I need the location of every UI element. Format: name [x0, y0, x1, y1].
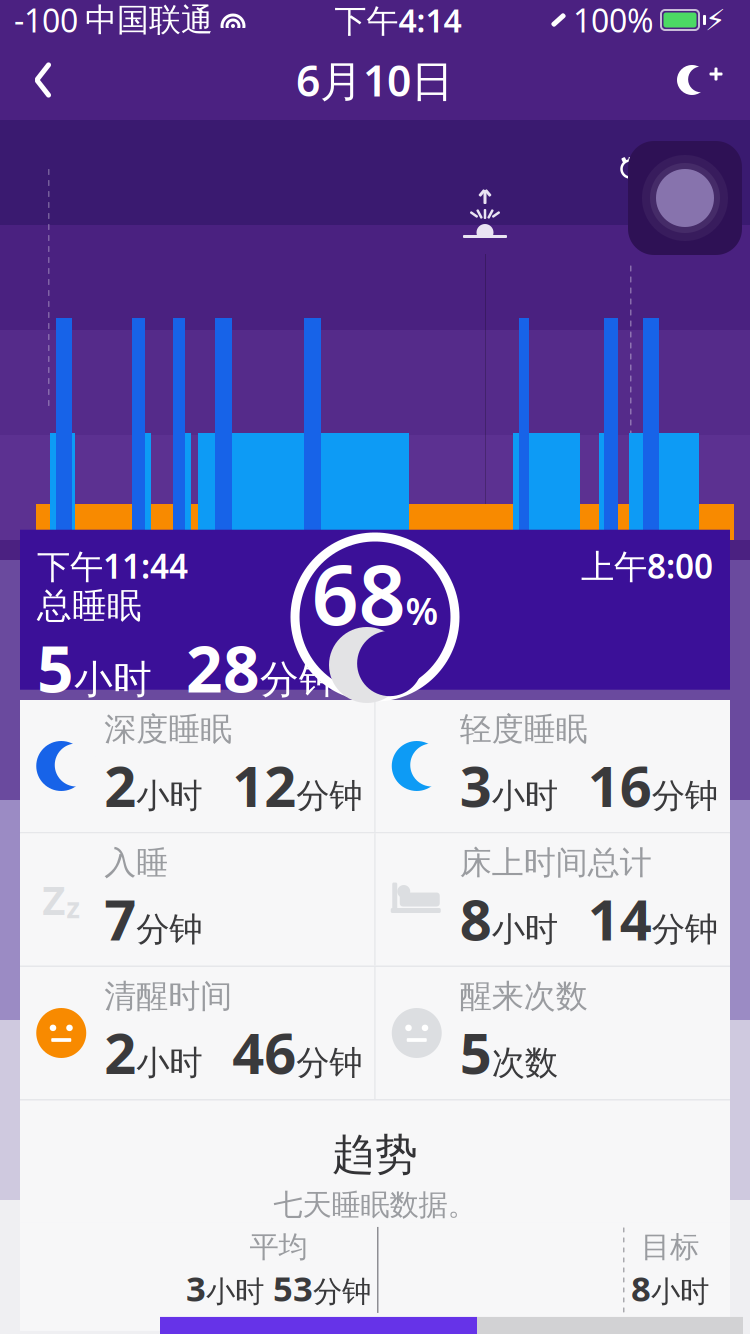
staticText: 6月10日 — [296, 52, 454, 108]
staticText: 28 — [152, 625, 260, 710]
staticText: 5 — [37, 625, 74, 710]
button[interactable]: Z — [20, 833, 374, 965]
staticText: 小时 — [651, 1274, 709, 1310]
staticText: 下午11:44 — [37, 544, 188, 588]
staticText: 中国联通 — [85, 0, 213, 40]
button[interactable]: 返回 — [14, 52, 72, 108]
staticText: z — [66, 889, 80, 926]
staticText: 12 — [202, 748, 296, 822]
staticText: 分钟 — [296, 775, 362, 816]
staticText: 轻度睡眠 — [460, 710, 588, 749]
staticText: 小时 — [206, 1274, 273, 1310]
staticText: 小时 — [74, 656, 152, 703]
staticText: 3 — [186, 1265, 206, 1311]
staticText: 分钟 — [296, 1042, 362, 1083]
staticText: 床上时间总计 — [460, 843, 652, 882]
staticText: 分钟 — [136, 909, 202, 950]
staticText: 小时 — [136, 775, 202, 816]
staticText: 分钟 — [652, 775, 718, 816]
staticText: 总睡眠 — [37, 585, 142, 627]
staticText: 100% — [573, 0, 654, 41]
staticText: 14 — [558, 881, 652, 956]
staticText: 小时 — [492, 775, 558, 816]
staticText: 清醒时间 — [104, 977, 232, 1016]
button[interactable]: 床上时间总计 — [376, 833, 730, 965]
staticText: 2 — [104, 748, 136, 822]
staticText: 分钟 — [313, 1274, 371, 1310]
staticText: ⚡︎ — [705, 3, 726, 37]
staticText: 8 — [631, 1265, 651, 1311]
staticText: 小时 — [136, 1042, 202, 1083]
button[interactable]: 醒来次数 — [376, 967, 730, 1099]
staticText: 深度睡眠 — [104, 710, 232, 749]
staticText: 8 — [460, 881, 492, 956]
staticText: 16 — [558, 748, 652, 822]
staticText: 46 — [202, 1015, 296, 1089]
staticText: 2 — [104, 1015, 136, 1089]
staticText: Z — [42, 873, 65, 926]
staticText: 上午8:00 — [581, 544, 713, 588]
staticText: 入睡 — [104, 843, 168, 882]
staticText: 68 — [311, 538, 405, 648]
button[interactable]: 添加睡眠 — [664, 58, 736, 102]
staticText: 5 — [460, 1015, 492, 1089]
button[interactable]: 深度睡眠 — [20, 700, 374, 832]
staticText: % — [405, 586, 438, 635]
staticText: 下午4:14 — [334, 0, 461, 41]
staticText: 七天睡眠数据。 — [273, 1187, 476, 1223]
staticText: 平均 — [249, 1229, 307, 1265]
staticText: 次数 — [492, 1042, 558, 1083]
staticText: 7 — [104, 881, 136, 956]
staticText: 53 — [273, 1265, 313, 1311]
staticText: 目标 — [641, 1229, 699, 1265]
staticText: -100 — [14, 0, 78, 41]
staticText: 分钟 — [260, 656, 338, 703]
staticText: 醒来次数 — [460, 977, 588, 1016]
button[interactable]: 轻度睡眠 — [376, 700, 730, 832]
staticText: 小时 — [492, 909, 558, 950]
staticText: 趋势 — [332, 1128, 418, 1181]
staticText: 3 — [460, 748, 492, 822]
staticText: 分钟 — [652, 909, 718, 950]
button[interactable]: 清醒时间 — [20, 967, 374, 1099]
